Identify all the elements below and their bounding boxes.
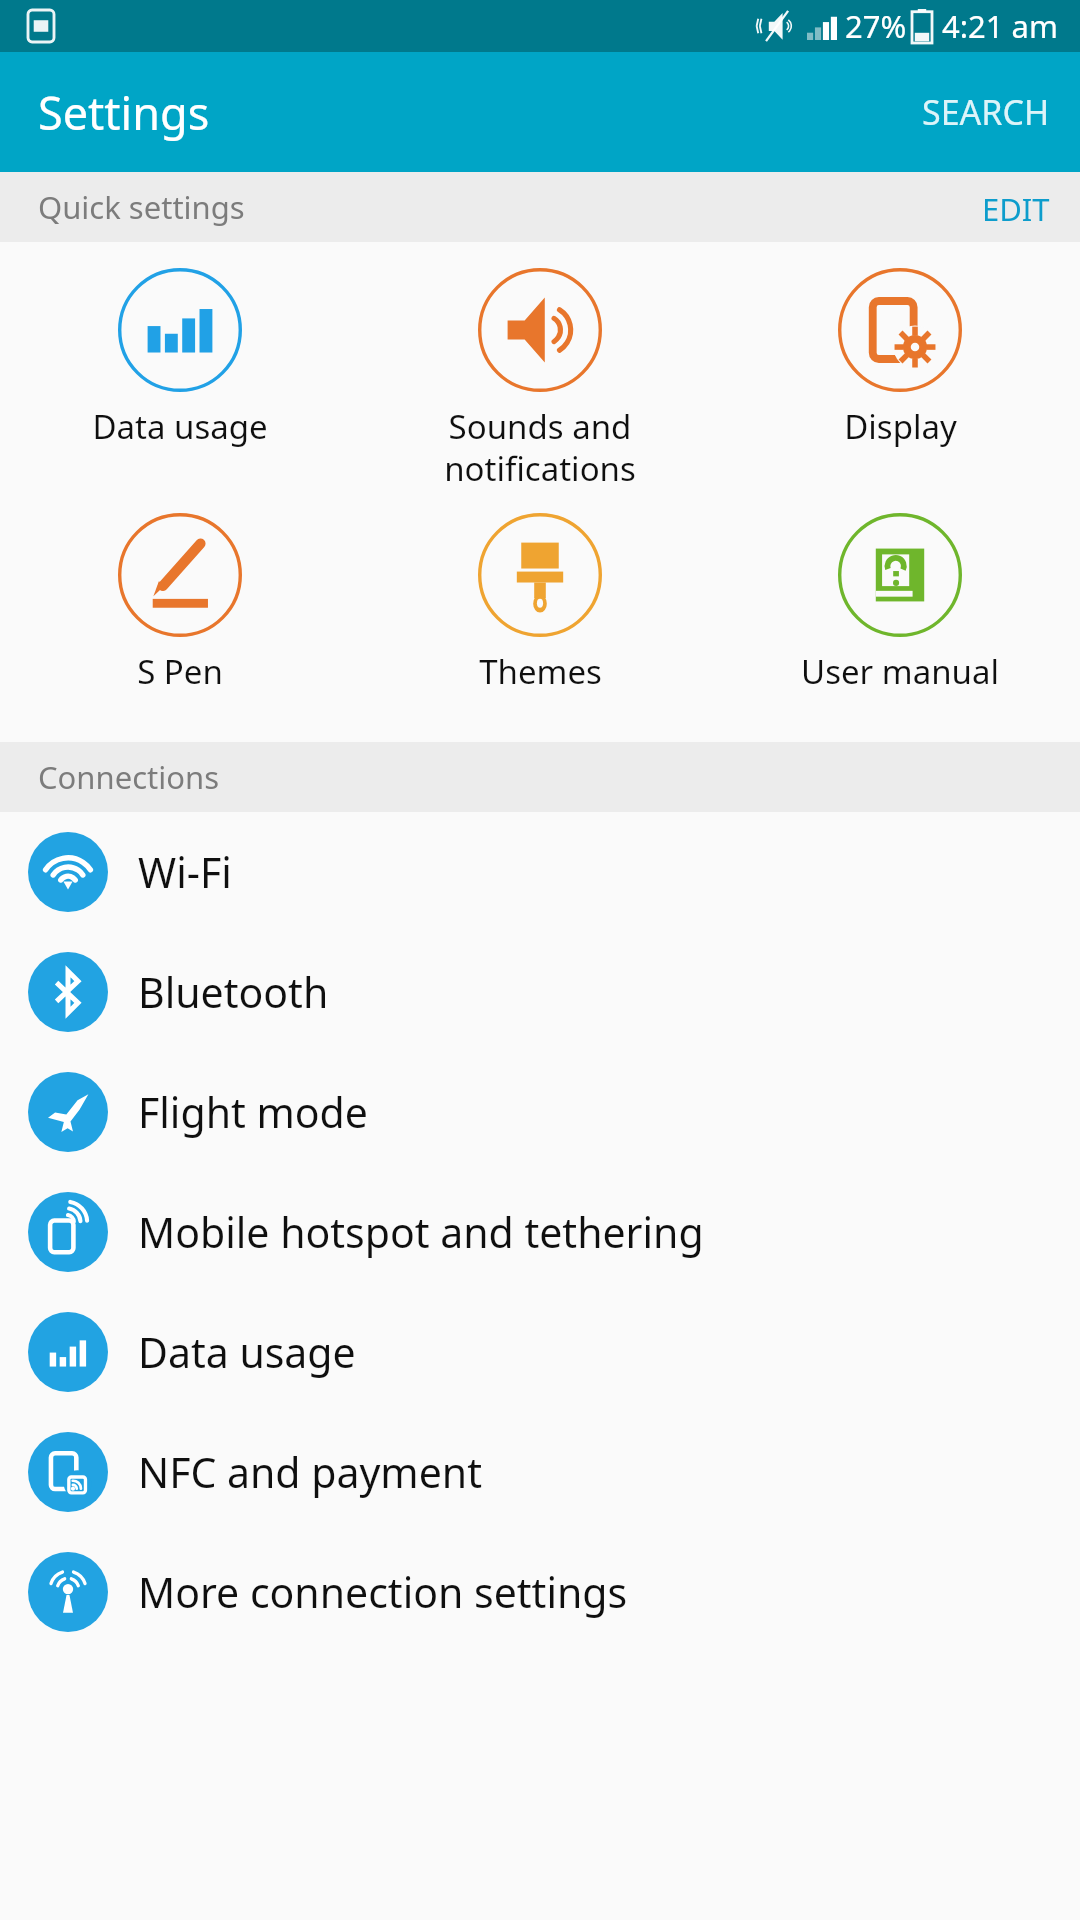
staticText: Bluetooth bbox=[138, 964, 329, 1020]
button[interactable]: Mobile hotspot and tethering bbox=[0, 1172, 1080, 1292]
button[interactable]: Display bbox=[720, 264, 1080, 453]
staticText: 27% bbox=[845, 5, 907, 47]
button[interactable]: Wi-Fi bbox=[0, 812, 1080, 932]
button[interactable]: Bluetooth bbox=[0, 932, 1080, 1052]
button[interactable]: SEARCH bbox=[892, 65, 1080, 159]
staticText: Sounds and notifications bbox=[444, 404, 636, 491]
staticText: Wi-Fi bbox=[138, 844, 232, 900]
staticText: NFC and payment bbox=[138, 1444, 482, 1500]
button[interactable]: Data usage bbox=[0, 264, 360, 453]
button[interactable]: NFC and payment bbox=[0, 1412, 1080, 1532]
staticText: S Pen bbox=[137, 649, 223, 694]
staticText: Connections bbox=[38, 756, 219, 798]
button[interactable]: More connection settings bbox=[0, 1532, 1080, 1652]
staticText: 4:21 am bbox=[942, 5, 1058, 47]
staticText: EDIT bbox=[982, 188, 1050, 226]
button[interactable]: Themes bbox=[360, 509, 720, 698]
button[interactable]: S Pen bbox=[0, 509, 360, 698]
staticText: Mobile hotspot and tethering bbox=[138, 1204, 704, 1260]
staticText: Flight mode bbox=[138, 1084, 368, 1140]
button[interactable]: User manual bbox=[720, 509, 1080, 698]
staticText: Themes bbox=[479, 649, 602, 694]
button[interactable]: Flight mode bbox=[0, 1052, 1080, 1172]
staticText: Data usage bbox=[138, 1324, 356, 1380]
button[interactable]: EDIT bbox=[952, 172, 1080, 242]
staticText: SEARCH bbox=[922, 89, 1050, 135]
other: Screenshot captured bbox=[28, 10, 54, 42]
staticText: More connection settings bbox=[138, 1564, 628, 1620]
staticText: Settings bbox=[38, 82, 210, 143]
staticText: Display bbox=[844, 404, 957, 449]
staticText: User manual bbox=[801, 649, 999, 694]
button[interactable]: Data usage bbox=[0, 1292, 1080, 1412]
staticText: Data usage bbox=[92, 404, 268, 449]
button[interactable]: Sounds and notifications bbox=[360, 264, 720, 495]
staticText: Quick settings bbox=[38, 186, 245, 228]
